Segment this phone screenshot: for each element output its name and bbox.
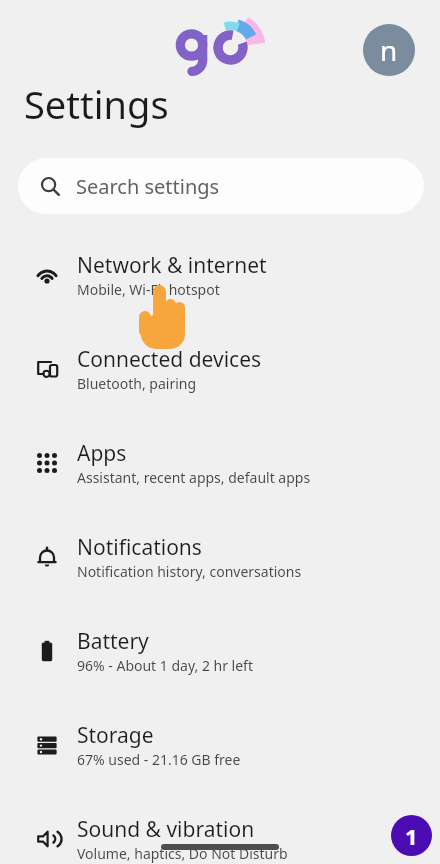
staticText: 67% used - 21.16 GB free: [77, 750, 241, 769]
staticText: Notification history, conversations: [77, 562, 302, 581]
button[interactable]: Notifications: [0, 510, 440, 604]
staticText: 1: [405, 821, 418, 851]
button[interactable]: 1: [391, 815, 432, 856]
staticText: n: [380, 31, 398, 69]
staticText: Settings: [24, 78, 169, 130]
staticText: Apps: [77, 439, 127, 468]
staticText: Network & internet: [77, 251, 267, 280]
staticText: Sound & vibration: [77, 815, 255, 844]
staticText: Notifications: [77, 533, 202, 562]
staticText: Mobile, Wi‑Fi, hotspot: [77, 280, 220, 299]
staticText: Assistant, recent apps, default apps: [77, 468, 311, 487]
staticText: Battery: [77, 627, 149, 656]
button[interactable]: Connected devices: [0, 322, 440, 416]
button[interactable]: Storage: [0, 698, 440, 792]
staticText: Storage: [77, 721, 154, 750]
staticText: Connected devices: [77, 345, 262, 374]
button[interactable]: Sound & vibration: [0, 792, 440, 864]
button[interactable]: Search settings: [18, 158, 424, 214]
button[interactable]: Apps: [0, 416, 440, 510]
button[interactable]: Battery: [0, 604, 440, 698]
button[interactable]: Network & internet: [0, 228, 440, 322]
staticText: Volume, haptics, Do Not Disturb: [77, 844, 288, 863]
staticText: Bluetooth, pairing: [77, 374, 197, 393]
staticText: 96% - About 1 day, 2 hr left: [77, 656, 253, 675]
button[interactable]: n: [363, 24, 415, 76]
staticText: Search settings: [76, 173, 220, 200]
